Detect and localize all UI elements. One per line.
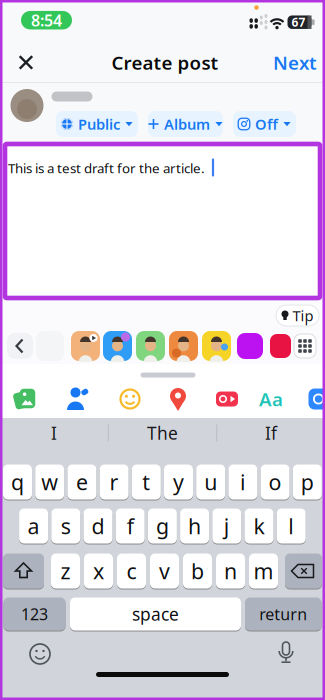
- button[interactable]: space: [70, 597, 241, 631]
- button[interactable]: b: [183, 553, 212, 589]
- button[interactable]: [117, 386, 143, 412]
- button[interactable]: 123: [3, 597, 65, 631]
- button[interactable]: Public: [56, 111, 138, 137]
- button[interactable]: Aa: [256, 386, 286, 412]
- button[interactable]: z: [51, 553, 80, 589]
- staticText: s: [61, 512, 71, 540]
- staticText: i: [240, 468, 246, 496]
- staticText: The: [147, 421, 178, 444]
- button[interactable]: n: [216, 553, 245, 589]
- button[interactable]: y: [164, 464, 193, 500]
- staticText: Next: [273, 50, 317, 75]
- staticText: d: [91, 512, 104, 540]
- staticText: space: [132, 602, 179, 625]
- button[interactable]: t: [132, 464, 161, 500]
- staticText: v: [159, 557, 170, 585]
- staticText: e: [76, 468, 88, 496]
- button[interactable]: [305, 387, 325, 411]
- button[interactable]: [3, 553, 44, 589]
- button[interactable]: [270, 334, 291, 358]
- staticText: w: [41, 468, 58, 496]
- staticText: n: [224, 557, 237, 585]
- staticText: 67: [291, 14, 305, 30]
- button[interactable]: c: [117, 553, 146, 589]
- staticText: f: [127, 512, 134, 540]
- staticText: p: [301, 468, 314, 496]
- button[interactable]: x: [84, 553, 113, 589]
- button[interactable]: [11, 47, 41, 77]
- button[interactable]: i: [228, 464, 257, 500]
- button[interactable]: [136, 331, 165, 361]
- button[interactable]: If: [221, 420, 321, 446]
- button[interactable]: I: [4, 420, 104, 446]
- button[interactable]: Album: [148, 111, 223, 137]
- button[interactable]: [12, 386, 38, 412]
- staticText: g: [156, 512, 169, 540]
- staticText: l: [288, 512, 294, 540]
- button[interactable]: Next: [266, 47, 324, 77]
- staticText: b: [191, 557, 204, 585]
- staticText: Tip: [292, 306, 313, 325]
- staticText: a: [28, 512, 40, 540]
- button[interactable]: [169, 331, 198, 361]
- button[interactable]: [213, 386, 241, 412]
- staticText: This is a test draft for the article.: [8, 159, 205, 177]
- button[interactable]: [103, 331, 132, 361]
- staticText: x: [93, 557, 104, 585]
- button[interactable]: g: [148, 508, 177, 544]
- button[interactable]: [237, 333, 263, 359]
- button[interactable]: d: [83, 508, 112, 544]
- button[interactable]: k: [244, 508, 273, 544]
- staticText: c: [126, 557, 136, 585]
- staticText: 8:54: [31, 10, 62, 31]
- button[interactable]: l: [277, 508, 306, 544]
- staticText: Album: [164, 114, 210, 134]
- staticText: Off: [255, 114, 278, 134]
- button[interactable]: q: [3, 464, 32, 500]
- button[interactable]: v: [150, 553, 179, 589]
- staticText: return: [259, 603, 307, 625]
- button[interactable]: [65, 386, 91, 412]
- button[interactable]: u: [196, 464, 225, 500]
- staticText: r: [110, 468, 119, 496]
- button[interactable]: w: [35, 464, 64, 500]
- button[interactable]: r: [100, 464, 129, 500]
- staticText: z: [60, 557, 70, 585]
- staticText: t: [142, 468, 150, 496]
- staticText: If: [265, 421, 277, 444]
- staticText: y: [173, 468, 184, 496]
- button[interactable]: [202, 331, 231, 361]
- button[interactable]: [294, 334, 316, 358]
- button[interactable]: [71, 331, 100, 361]
- button[interactable]: a: [19, 508, 48, 544]
- staticText: q: [11, 468, 24, 496]
- staticText: Create post: [111, 50, 218, 75]
- button[interactable]: e: [67, 464, 96, 500]
- button[interactable]: o: [261, 464, 290, 500]
- button[interactable]: h: [180, 508, 209, 544]
- staticText: k: [253, 512, 264, 540]
- staticText: u: [204, 468, 217, 496]
- staticText: 123: [21, 603, 48, 625]
- staticText: I: [51, 421, 57, 444]
- staticText: Public: [78, 114, 120, 134]
- button[interactable]: [285, 553, 322, 589]
- button[interactable]: j: [212, 508, 241, 544]
- button[interactable]: [165, 386, 191, 412]
- button[interactable]: Tip: [276, 305, 319, 326]
- button[interactable]: s: [51, 508, 80, 544]
- button[interactable]: m: [249, 553, 278, 589]
- staticText: h: [188, 512, 201, 540]
- button[interactable]: return: [245, 597, 321, 631]
- button[interactable]: [275, 641, 297, 665]
- button[interactable]: The: [112, 420, 212, 446]
- staticText: o: [269, 468, 282, 496]
- staticText: Aa: [259, 387, 283, 411]
- button[interactable]: p: [293, 464, 322, 500]
- staticText: m: [253, 557, 273, 585]
- button[interactable]: [27, 641, 53, 667]
- button[interactable]: f: [116, 508, 145, 544]
- button[interactable]: Off: [233, 111, 296, 137]
- button[interactable]: [7, 333, 33, 359]
